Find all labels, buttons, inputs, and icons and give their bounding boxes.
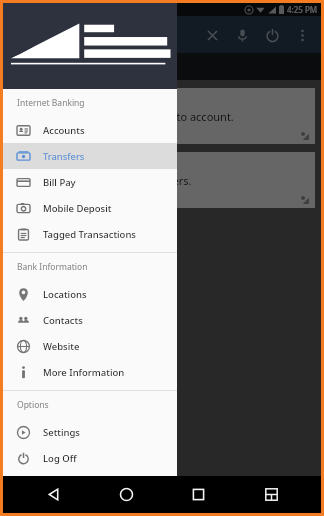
staticText: Contacts <box>43 314 83 327</box>
button[interactable]: Tagged Transactions <box>3 221 177 247</box>
staticText: Mobile Deposit <box>43 202 112 215</box>
button[interactable]: Accounts <box>3 117 177 143</box>
button[interactable]: Split screen <box>249 476 293 513</box>
button[interactable]: View and manage your transfers. <box>9 152 315 208</box>
button[interactable]: Transfers <box>3 143 177 169</box>
button[interactable]: Back <box>31 476 75 513</box>
staticText: Log Off <box>43 452 77 465</box>
button[interactable]: More Information <box>3 359 177 385</box>
button[interactable]: More options <box>287 20 317 50</box>
button[interactable]: Website <box>3 333 177 359</box>
staticText: Internet Banking <box>17 97 85 109</box>
button[interactable]: Log Off <box>3 445 177 471</box>
button[interactable]: Locations <box>3 281 177 307</box>
button[interactable]: Settings <box>3 419 177 445</box>
button[interactable]: Bill Pay <box>3 169 177 195</box>
button[interactable]: Transfer money from account to account. <box>9 88 315 144</box>
button[interactable]: Contacts <box>3 307 177 333</box>
button[interactable]: Log off <box>257 20 287 50</box>
staticText: More Information <box>43 366 125 379</box>
staticText: View and manage your transfers. <box>21 173 192 188</box>
staticText: Website <box>43 340 80 353</box>
button[interactable]: Voice search <box>227 20 257 50</box>
staticText: Transfer money from account to account. <box>21 109 234 124</box>
button[interactable]: Recents <box>176 476 220 513</box>
staticText: Options <box>17 399 49 411</box>
button[interactable]: Home <box>104 476 148 513</box>
staticText: Bank Information <box>17 261 88 273</box>
staticText: Accounts <box>43 124 85 137</box>
staticText: Tagged Transactions <box>43 228 136 241</box>
staticText: Locations <box>43 288 87 301</box>
button[interactable]: Close <box>197 20 227 50</box>
staticText: 4:25 PM <box>287 4 318 15</box>
button[interactable]: Mobile Deposit <box>3 195 177 221</box>
staticText: Transfer Funds <box>17 58 108 76</box>
staticText: Transfers <box>43 150 85 163</box>
staticText: Settings <box>43 426 80 439</box>
staticText: Bill Pay <box>43 176 76 189</box>
